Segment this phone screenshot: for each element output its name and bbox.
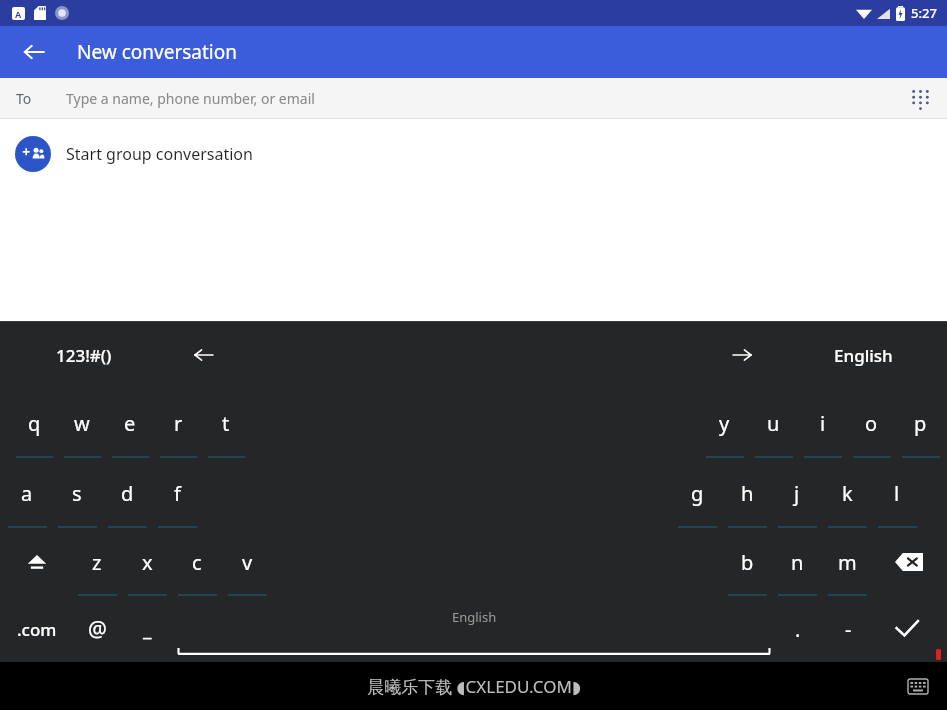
button[interactable]: . bbox=[776, 596, 820, 662]
staticText: 晨曦乐下载 ◖CXLEDU.COM◗ bbox=[367, 675, 581, 698]
button[interactable]: a bbox=[2, 458, 52, 528]
button[interactable]: j bbox=[772, 458, 822, 528]
staticText: o bbox=[865, 410, 878, 437]
button[interactable]: q bbox=[10, 388, 58, 458]
staticText: @ bbox=[88, 615, 107, 644]
button[interactable]: @ bbox=[74, 596, 120, 662]
button[interactable]: i bbox=[798, 388, 847, 458]
staticText: a bbox=[21, 480, 33, 507]
button[interactable]: u bbox=[749, 388, 798, 458]
button[interactable]: Enter bbox=[876, 596, 938, 662]
staticText: - bbox=[845, 616, 852, 643]
button[interactable]: Back bbox=[14, 32, 54, 72]
staticText: j bbox=[794, 480, 800, 507]
button[interactable]: Backspace bbox=[880, 528, 938, 596]
button[interactable]: g bbox=[672, 458, 722, 528]
staticText: . bbox=[795, 616, 801, 643]
button[interactable]: b bbox=[722, 528, 772, 596]
button[interactable]: y bbox=[700, 388, 749, 458]
button[interactable]: o bbox=[847, 388, 896, 458]
button[interactable]: To bbox=[0, 78, 947, 119]
staticText: A bbox=[15, 8, 22, 20]
button[interactable]: .com bbox=[6, 596, 68, 662]
button[interactable]: Start group conversation bbox=[0, 119, 947, 189]
staticText: 5:27 bbox=[911, 4, 937, 22]
staticText: Start group conversation bbox=[66, 143, 253, 165]
button[interactable]: m bbox=[822, 528, 872, 596]
staticText: 123!#() bbox=[56, 344, 112, 367]
staticText: n bbox=[791, 549, 804, 576]
button[interactable]: t bbox=[202, 388, 250, 458]
staticText: g bbox=[691, 480, 704, 507]
button[interactable]: s bbox=[52, 458, 102, 528]
button[interactable]: Switch keyboard bbox=[901, 669, 935, 703]
staticText: English bbox=[452, 608, 497, 626]
staticText: .com bbox=[17, 618, 57, 641]
button[interactable]: Move cursor right bbox=[724, 337, 760, 373]
staticText: f bbox=[174, 480, 181, 507]
button[interactable]: c bbox=[172, 528, 222, 596]
staticText: v bbox=[242, 549, 253, 576]
staticText: k bbox=[842, 480, 853, 507]
button[interactable]: z bbox=[72, 528, 122, 596]
staticText: To bbox=[16, 89, 32, 108]
staticText: p bbox=[914, 410, 927, 437]
button[interactable]: Space bbox=[176, 596, 772, 662]
button[interactable]: l bbox=[872, 458, 922, 528]
button[interactable]: k bbox=[822, 458, 872, 528]
button[interactable]: r bbox=[154, 388, 202, 458]
staticText: c bbox=[192, 549, 202, 576]
button[interactable]: Shift bbox=[8, 528, 66, 596]
button[interactable]: 123!#() bbox=[48, 336, 120, 375]
button[interactable]: n bbox=[772, 528, 822, 596]
button[interactable]: w bbox=[58, 388, 106, 458]
staticText: t bbox=[222, 410, 230, 437]
button[interactable]: English bbox=[826, 336, 901, 375]
staticText: m bbox=[838, 549, 857, 576]
button[interactable]: e bbox=[106, 388, 154, 458]
staticText: Type a name, phone number, or email bbox=[66, 89, 315, 108]
button[interactable]: h bbox=[722, 458, 772, 528]
button[interactable]: d bbox=[102, 458, 152, 528]
staticText: x bbox=[142, 549, 153, 576]
button[interactable]: f bbox=[152, 458, 202, 528]
staticText: z bbox=[92, 549, 102, 576]
staticText: h bbox=[741, 480, 754, 507]
staticText: e bbox=[124, 410, 136, 437]
staticText: l bbox=[894, 480, 900, 507]
staticText: i bbox=[820, 410, 826, 437]
staticText: r bbox=[174, 410, 183, 437]
staticText: New conversation bbox=[77, 39, 237, 65]
button[interactable]: Dialpad bbox=[901, 80, 939, 118]
staticText: s bbox=[72, 480, 82, 507]
staticText: y bbox=[719, 410, 730, 437]
button[interactable]: Move cursor left bbox=[186, 337, 222, 373]
button[interactable]: _ bbox=[124, 596, 170, 662]
button[interactable]: x bbox=[122, 528, 172, 596]
staticText: d bbox=[121, 480, 134, 507]
staticText: w bbox=[74, 410, 90, 437]
button[interactable]: - bbox=[826, 596, 870, 662]
staticText: u bbox=[767, 410, 780, 437]
staticText: q bbox=[28, 410, 41, 437]
button[interactable]: v bbox=[222, 528, 272, 596]
staticText: b bbox=[741, 549, 754, 576]
staticText: English bbox=[834, 344, 893, 367]
staticText: _ bbox=[143, 616, 152, 642]
button[interactable]: p bbox=[896, 388, 945, 458]
